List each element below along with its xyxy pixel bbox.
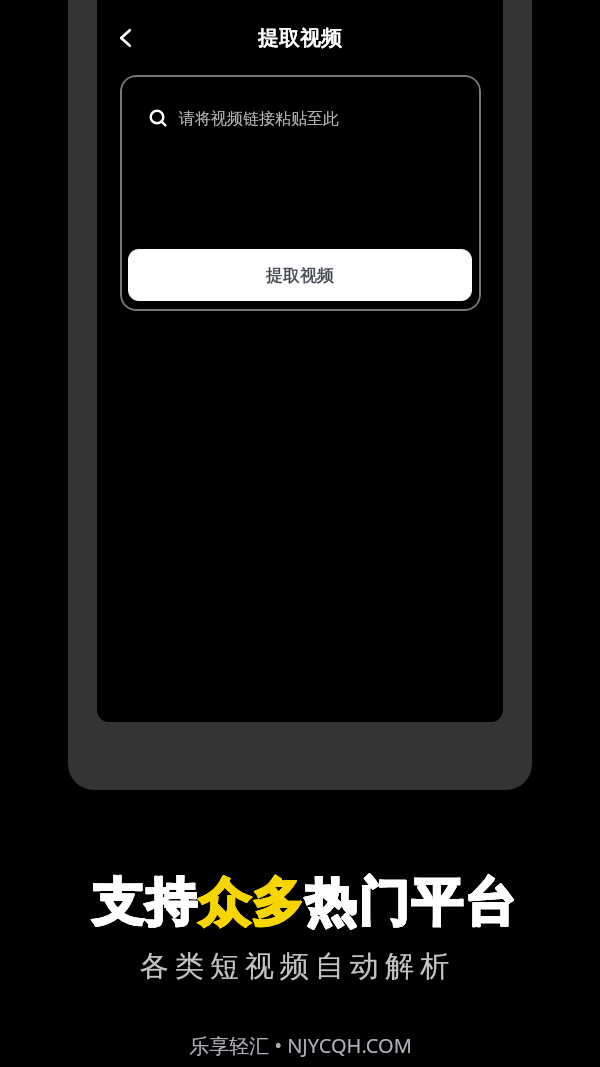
staticText: 提取视频 [266, 265, 334, 286]
button[interactable]: 提取视频 [128, 249, 472, 301]
staticText: 提取视频 [266, 265, 334, 286]
staticText: 支持众多热门平台 [92, 871, 518, 935]
staticText: 提取视频 [258, 25, 342, 51]
button[interactable]: Back [105, 18, 145, 58]
staticText: 请将视频链接粘贴至此 [179, 109, 339, 129]
staticText: 各类短视频自动解析 [137, 948, 452, 985]
staticText: 乐享轻汇 • NJYCQH.COM [189, 1032, 412, 1059]
staticText: 提取视频 [258, 25, 342, 51]
staticText: 支持众多热门平台 [92, 871, 518, 935]
